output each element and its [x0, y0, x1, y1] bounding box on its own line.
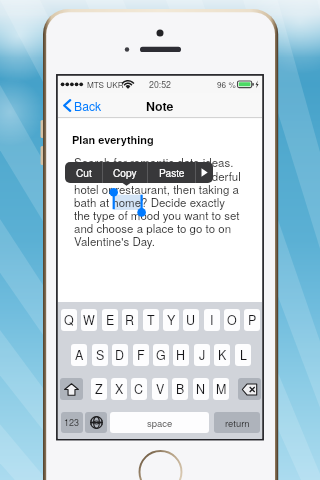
staticText: 20:52: [149, 78, 172, 91]
button[interactable]: U: [183, 309, 199, 331]
staticText: Plan everything: [72, 132, 154, 148]
button[interactable]: Z: [91, 378, 107, 400]
staticText: V: [156, 380, 165, 398]
button[interactable]: Change keyboard: [85, 412, 107, 433]
staticText: Note: [146, 97, 174, 115]
staticText: I: [210, 311, 214, 329]
button[interactable]: C: [131, 378, 147, 400]
staticText: Copy: [113, 165, 137, 180]
button[interactable]: A: [71, 344, 87, 366]
staticText: 96 %: [217, 79, 236, 91]
staticText: Cut: [76, 165, 92, 180]
button[interactable]: R: [122, 309, 138, 331]
staticText: A: [75, 346, 84, 364]
button[interactable]: K: [214, 344, 230, 366]
staticText: Back: [74, 97, 102, 114]
button[interactable]: 123: [61, 412, 83, 433]
staticText: X: [115, 380, 124, 398]
staticText: Y: [167, 311, 176, 329]
button[interactable]: H: [173, 344, 189, 366]
button[interactable]: Shift: [60, 378, 83, 400]
staticText: B: [176, 380, 185, 398]
staticText: D: [115, 346, 125, 364]
staticText: Z: [95, 380, 103, 398]
staticText: U: [186, 311, 196, 329]
button[interactable]: Y: [163, 309, 179, 331]
button[interactable]: G: [153, 344, 169, 366]
staticText: Search for romantic date ideas. Looking …: [74, 154, 241, 249]
staticText: 123: [64, 416, 80, 429]
staticText: N: [196, 380, 206, 398]
button[interactable]: M: [213, 378, 229, 400]
button[interactable]: N: [193, 378, 209, 400]
button[interactable]: Cut: [65, 162, 102, 183]
button[interactable]: V: [152, 378, 168, 400]
staticText: Q: [64, 311, 74, 329]
button[interactable]: W: [81, 309, 97, 331]
staticText: Paste: [159, 165, 185, 180]
staticText: T: [147, 311, 155, 329]
staticText: W: [83, 311, 95, 329]
button[interactable]: space: [110, 412, 209, 433]
button[interactable]: More: [196, 162, 213, 183]
button[interactable]: D: [112, 344, 128, 366]
staticText: MTS UKR: [87, 79, 124, 91]
button[interactable]: P: [244, 309, 260, 331]
staticText: M: [216, 380, 227, 398]
staticText: C: [134, 380, 144, 398]
staticText: return: [225, 416, 250, 430]
staticText: space: [147, 416, 173, 430]
staticText: L: [240, 346, 247, 364]
button[interactable]: T: [143, 309, 159, 331]
staticText: R: [125, 311, 135, 329]
staticText: J: [199, 346, 206, 364]
button[interactable]: F: [133, 344, 149, 366]
staticText: E: [106, 311, 115, 329]
button[interactable]: Back: [60, 95, 102, 116]
staticText: K: [218, 346, 227, 364]
button[interactable]: E: [102, 309, 118, 331]
staticText: H: [176, 346, 186, 364]
button[interactable]: J: [194, 344, 210, 366]
button[interactable]: L: [235, 344, 251, 366]
staticText: F: [137, 346, 145, 364]
button[interactable]: Copy: [103, 162, 147, 183]
button[interactable]: X: [111, 378, 127, 400]
staticText: G: [156, 346, 166, 364]
button[interactable]: return: [214, 412, 260, 433]
button[interactable]: B: [172, 378, 188, 400]
button[interactable]: I: [204, 309, 220, 331]
button[interactable]: S: [92, 344, 108, 366]
staticText: O: [227, 311, 237, 329]
button[interactable]: Q: [61, 309, 77, 331]
button[interactable]: Paste: [148, 162, 195, 183]
button[interactable]: Backspace: [238, 378, 261, 400]
staticText: P: [248, 311, 257, 329]
button[interactable]: O: [224, 309, 240, 331]
staticText: S: [96, 346, 105, 364]
